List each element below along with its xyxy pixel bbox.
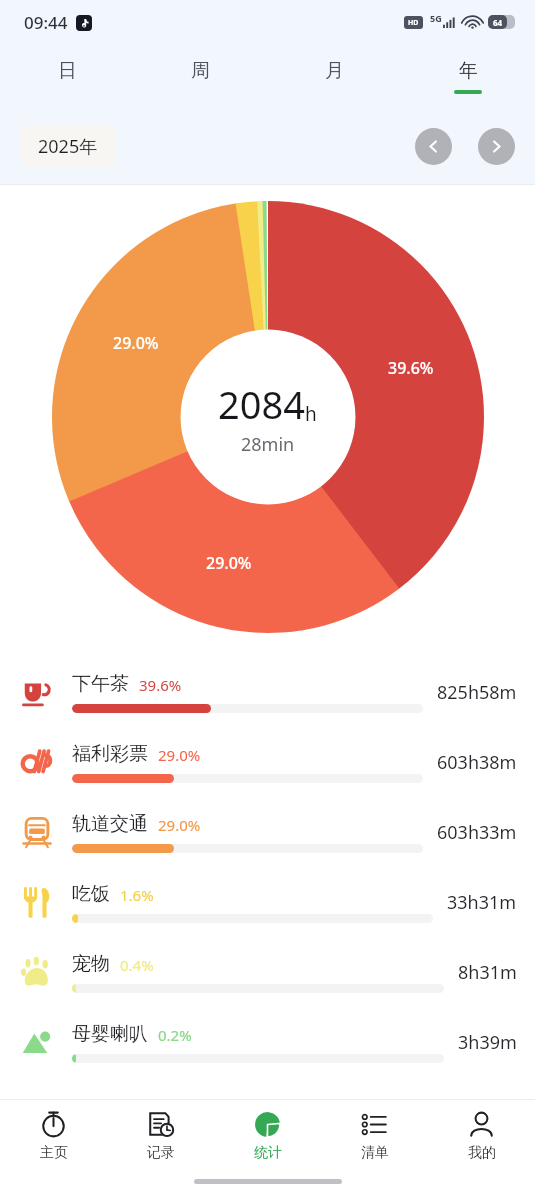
button[interactable]: 吃饭: [0, 867, 535, 937]
staticText: HD: [408, 18, 419, 28]
button[interactable]: 轨道交通: [0, 797, 535, 867]
staticText: 2025年: [38, 134, 98, 159]
button[interactable]: 月: [267, 44, 401, 108]
staticText: 603h38m: [437, 750, 517, 775]
button[interactable]: Previous year: [415, 128, 452, 165]
staticText: 年: [459, 59, 478, 83]
staticText: 29.0%: [113, 332, 159, 354]
staticText: 2084: [218, 378, 305, 430]
button[interactable]: 清单: [321, 1100, 428, 1172]
button[interactable]: 年: [401, 44, 535, 108]
staticText: 8h31m: [458, 960, 517, 985]
staticText: 周: [191, 59, 210, 83]
staticText: 1.6%: [120, 885, 154, 905]
staticText: 记录: [147, 1144, 175, 1162]
staticText: 宠物: [72, 952, 110, 976]
staticText: 825h58m: [437, 680, 517, 705]
staticText: h: [305, 401, 317, 427]
button[interactable]: 主页: [0, 1100, 107, 1172]
staticText: 0.2%: [158, 1025, 192, 1045]
button[interactable]: 2025年: [20, 125, 116, 168]
button[interactable]: 母婴喇叭: [0, 1007, 535, 1077]
button[interactable]: 日: [0, 44, 133, 108]
button[interactable]: 统计: [214, 1100, 321, 1172]
button[interactable]: 记录: [107, 1100, 214, 1172]
staticText: 下午茶: [72, 672, 129, 696]
staticText: 28min: [241, 432, 295, 457]
staticText: 09:44: [24, 11, 68, 34]
staticText: 母婴喇叭: [72, 1022, 148, 1046]
staticText: 月: [325, 59, 344, 83]
staticText: 39.6%: [139, 675, 182, 695]
staticText: 轨道交通: [72, 812, 148, 836]
staticText: 64: [493, 17, 503, 28]
staticText: 603h33m: [437, 820, 517, 845]
staticText: 29.0%: [158, 815, 201, 835]
staticText: 29.0%: [158, 745, 201, 765]
staticText: 日: [58, 59, 77, 83]
button[interactable]: 福利彩票: [0, 727, 535, 797]
staticText: 39.6%: [388, 357, 434, 379]
staticText: 清单: [361, 1144, 389, 1162]
staticText: 3h39m: [458, 1030, 517, 1055]
button[interactable]: 宠物: [0, 937, 535, 1007]
button[interactable]: 下午茶: [0, 657, 535, 727]
staticText: 我的: [468, 1144, 496, 1162]
staticText: 0.4%: [120, 955, 154, 975]
staticText: 33h31m: [447, 890, 517, 915]
button[interactable]: Next year: [478, 128, 515, 165]
button[interactable]: 我的: [428, 1100, 535, 1172]
staticText: 吃饭: [72, 882, 110, 906]
staticText: 主页: [40, 1144, 68, 1162]
button[interactable]: 周: [133, 44, 267, 108]
staticText: 福利彩票: [72, 742, 148, 766]
staticText: 统计: [254, 1144, 282, 1162]
staticText: 29.0%: [206, 552, 252, 574]
staticText: 5G: [430, 12, 442, 24]
